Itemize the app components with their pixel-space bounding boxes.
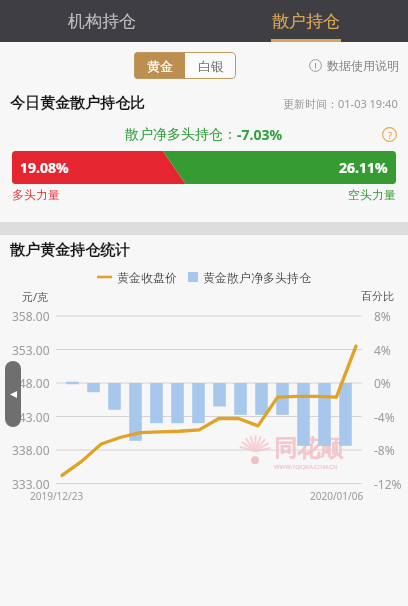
staticText: -7.03% — [237, 125, 283, 144]
staticText: 黄金 — [147, 58, 173, 74]
staticText: 散户净多头持仓： — [125, 126, 237, 144]
staticText: 黄金收盘价 — [117, 270, 177, 285]
staticText: WWW.10JQKA.COM.CN — [274, 463, 338, 471]
staticText: 百分比 — [361, 289, 394, 303]
staticText: 26.11% — [339, 158, 388, 177]
staticText: 空头力量 — [348, 187, 396, 202]
staticText: 黄金散户净多头持仓 — [203, 270, 311, 285]
staticText: -4% — [374, 409, 395, 425]
button[interactable]: 数据使用说明 — [309, 58, 399, 73]
button[interactable]: 帮助说明 — [382, 127, 397, 142]
staticText: ? — [388, 129, 392, 141]
staticText: 8% — [374, 308, 391, 324]
button[interactable]: 机构持仓 — [0, 0, 204, 42]
staticText: 4% — [374, 342, 391, 358]
staticText: 333.00 — [12, 476, 50, 492]
staticText: 更新时间：01-03 19:40 — [283, 96, 398, 111]
staticText: 今日黄金散户持仓比 — [10, 94, 145, 113]
button[interactable]: 黄金 — [134, 52, 185, 79]
staticText: 散户持仓 — [272, 11, 340, 32]
staticText: 机构持仓 — [68, 11, 136, 32]
staticText: 353.00 — [12, 342, 50, 358]
staticText: 19.08% — [20, 158, 69, 177]
staticText: 2019/12/23 — [30, 489, 84, 503]
staticText: 散户黄金持仓统计 — [10, 241, 130, 260]
staticText: 白银 — [198, 58, 224, 74]
staticText: 338.00 — [12, 442, 50, 458]
staticText: 348.00 — [12, 375, 50, 391]
staticText: 343.00 — [12, 409, 50, 425]
staticText: 0% — [374, 375, 391, 391]
staticText: 数据使用说明 — [327, 58, 399, 73]
staticText: -8% — [374, 442, 395, 458]
button[interactable]: 向左展开 — [5, 361, 21, 427]
staticText: 元/克 — [22, 289, 49, 304]
staticText: 同花顺 — [274, 434, 343, 463]
staticText: -12% — [374, 476, 402, 492]
button[interactable]: 白银 — [185, 52, 236, 79]
staticText: 358.00 — [12, 308, 50, 324]
staticText: 2020/01/06 — [310, 489, 364, 503]
staticText: 多头力量 — [12, 187, 60, 202]
button[interactable]: 散户持仓 — [204, 0, 408, 42]
